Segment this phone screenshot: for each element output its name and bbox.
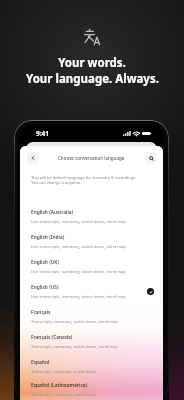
button[interactable]: Español (Latinoamérica) [20,379,163,400]
button[interactable]: English (UK) [20,254,163,279]
staticText: English (UK) [31,259,59,266]
staticText: Français [31,309,51,316]
staticText: English (Australia) [31,209,74,216]
staticText: English (US) [31,284,59,291]
staticText: Transcripts, summary, action items, mind… [31,344,118,349]
staticText: Live transcripts, summary, action items,… [31,269,126,274]
staticText: English (India) [31,234,65,241]
staticText: Live transcripts, summary, action items,… [31,244,126,249]
button[interactable]: Français (Canada) [20,329,163,354]
staticText: Your words. [58,55,126,71]
button[interactable]: English (Australia) [20,204,163,229]
staticText: Transcripts, summary, action items [31,392,97,397]
button[interactable]: Español [20,354,163,379]
button[interactable]: English (US) [20,279,163,304]
staticText: 9:41 [36,129,49,138]
staticText: Español (Latinoamérica) [31,382,88,389]
staticText: Choose conversation language [58,155,125,161]
staticText: Français (Canada) [31,334,73,341]
button[interactable]: English (India) [20,229,163,254]
staticText: You can change it anytime. [31,180,82,185]
button[interactable]: Français [20,304,163,329]
staticText: Your language. Always. [26,71,159,87]
staticText: This will be default language for summar… [31,175,137,180]
button[interactable]: Search [145,152,157,164]
staticText: Transcripts, summary, action items [31,369,97,374]
staticText: Live transcripts, summary, action items,… [31,219,126,224]
staticText: Español [31,359,50,366]
staticText: Transcripts, summary, action items, mind… [31,319,118,324]
staticText: Live transcripts, summary, action items,… [31,294,126,299]
button[interactable]: Back [27,152,39,164]
